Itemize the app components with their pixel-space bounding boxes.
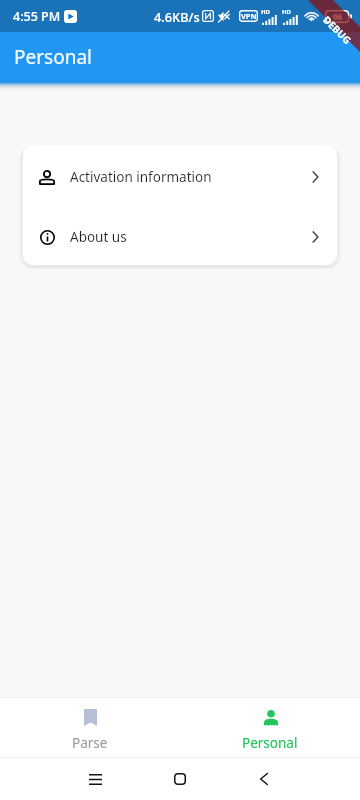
staticText: 4:55 PM bbox=[13, 8, 61, 25]
staticText: HD bbox=[261, 8, 270, 16]
staticText: HD bbox=[282, 8, 291, 16]
staticText: About us bbox=[70, 228, 127, 246]
button[interactable]: Home bbox=[163, 762, 197, 796]
staticText: Personal bbox=[14, 44, 92, 70]
button[interactable]: Back bbox=[247, 762, 281, 796]
staticText: Activation information bbox=[70, 168, 212, 186]
staticText: 4.6KB/s bbox=[154, 8, 200, 25]
staticText: 96 bbox=[333, 11, 343, 22]
button[interactable]: Activation information bbox=[23, 145, 337, 205]
staticText: VPN bbox=[241, 11, 257, 21]
button[interactable]: Recent apps bbox=[78, 762, 112, 796]
staticText: DEBUG bbox=[320, 13, 355, 47]
button[interactable]: About us bbox=[23, 205, 337, 265]
staticText: Personal bbox=[242, 734, 298, 752]
button[interactable]: Personal bbox=[180, 698, 360, 752]
staticText: Parse bbox=[72, 734, 108, 752]
button[interactable]: Parse bbox=[0, 698, 180, 752]
